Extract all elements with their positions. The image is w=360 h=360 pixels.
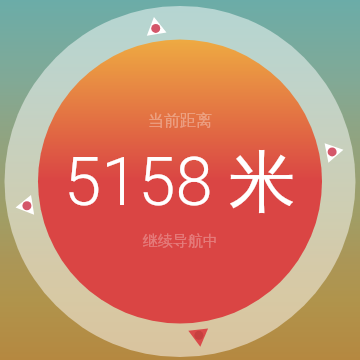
staticText: 继续导航中 bbox=[143, 232, 218, 251]
staticText: 5158 米 bbox=[64, 140, 296, 224]
staticText: 当前距离 bbox=[148, 111, 212, 131]
button[interactable]: Distance remaining 5158 meters bbox=[0, 0, 360, 360]
